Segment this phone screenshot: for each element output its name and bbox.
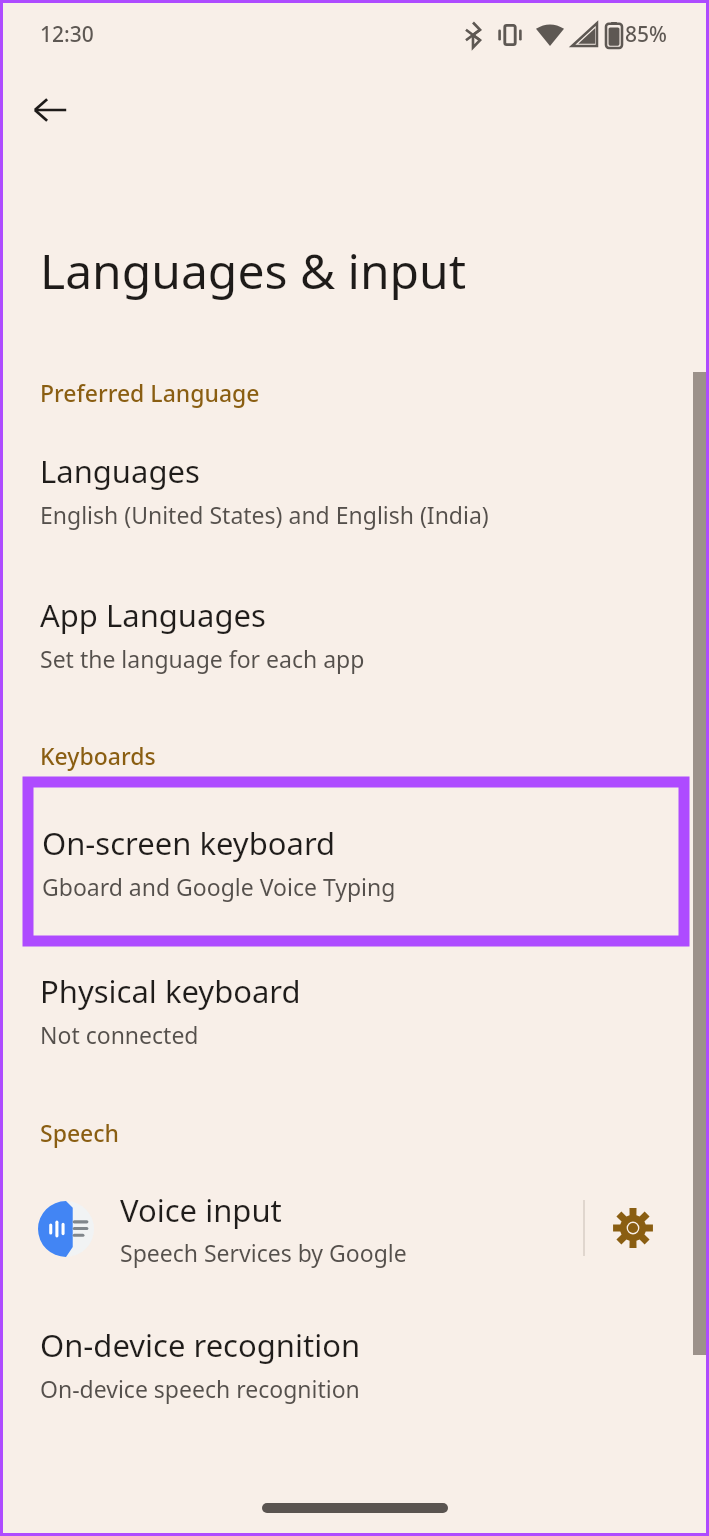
staticText: Preferred Language — [40, 377, 260, 408]
button[interactable]: Back — [22, 82, 78, 138]
staticText: On-device speech recognition — [40, 1373, 360, 1404]
staticText: Speech Services by Google — [120, 1237, 407, 1268]
staticText: 85% — [625, 20, 667, 49]
staticText: Not connected — [40, 1019, 199, 1050]
staticText: English (United States) and English (Ind… — [40, 499, 489, 530]
button[interactable]: Voice input settings — [585, 1184, 681, 1272]
staticText: Keyboards — [40, 740, 156, 771]
staticText: Physical keyboard — [40, 970, 301, 1012]
staticText: Languages — [40, 450, 200, 492]
button[interactable]: On-screen keyboard — [28, 782, 684, 941]
button[interactable]: Voice input — [0, 1189, 583, 1268]
button[interactable]: On-device recognition — [0, 1320, 709, 1408]
staticText: Speech — [40, 1117, 120, 1148]
button[interactable]: Languages — [0, 446, 709, 534]
button[interactable]: Physical keyboard — [0, 966, 709, 1054]
staticText: Voice input — [120, 1189, 282, 1231]
staticText: Languages & input — [40, 238, 467, 303]
staticText: 12:30 — [40, 20, 94, 49]
staticText: On-screen keyboard — [42, 822, 336, 864]
staticText: On-device recognition — [40, 1324, 361, 1366]
staticText: App Languages — [40, 594, 266, 636]
staticText: Gboard and Google Voice Typing — [42, 871, 396, 902]
button[interactable]: App Languages — [0, 590, 709, 678]
staticText: Set the language for each app — [40, 643, 365, 674]
